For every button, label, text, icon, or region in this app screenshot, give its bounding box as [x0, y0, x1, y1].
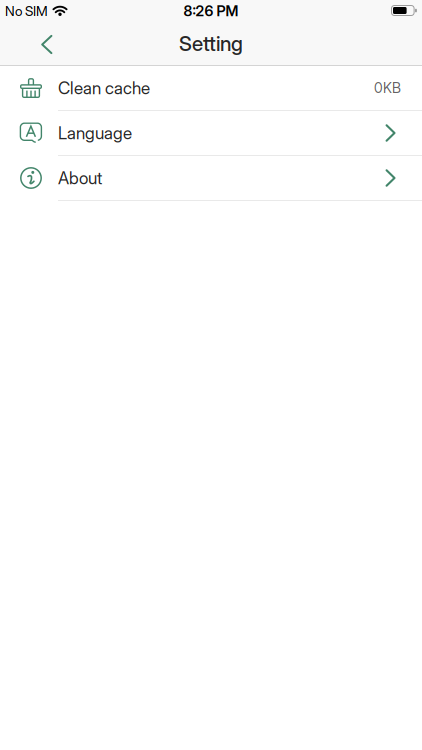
staticText: Language [58, 123, 132, 143]
staticText: Clean cache [58, 78, 150, 98]
staticText: 8:26 PM [183, 2, 238, 20]
staticText: 0KB [374, 79, 401, 96]
staticText: Setting [179, 31, 243, 56]
button[interactable]: Language [0, 111, 422, 156]
staticText: About [58, 168, 102, 188]
button[interactable]: Back [0, 33, 53, 54]
button[interactable]: About [0, 156, 422, 201]
button[interactable]: Clean cache [0, 66, 422, 111]
staticText: No SIM [5, 3, 48, 19]
